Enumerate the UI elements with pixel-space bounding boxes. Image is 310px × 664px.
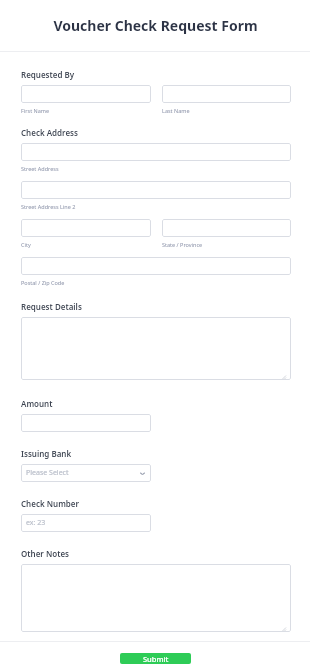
staticText: Street Address Line 2	[21, 203, 76, 210]
button[interactable]: Check Number	[21, 514, 151, 532]
staticText: ex: 23	[26, 518, 46, 528]
staticText: Submit	[143, 654, 169, 664]
staticText: City	[21, 241, 31, 248]
staticText: Requested By	[21, 69, 75, 80]
staticText: Other Notes	[21, 548, 70, 559]
staticText: Last Name	[162, 107, 190, 114]
staticText: Issuing Bank	[21, 448, 72, 459]
staticText: Check Number	[21, 498, 79, 509]
staticText: State / Province	[162, 241, 203, 248]
button[interactable]: Issuing Bank	[21, 464, 151, 482]
staticText: Request Details	[21, 301, 82, 312]
staticText: Street Address	[21, 165, 59, 172]
button[interactable]: Request Details	[21, 317, 291, 380]
staticText: First Name	[21, 107, 50, 114]
button[interactable]: Other Notes	[21, 564, 291, 632]
button[interactable]: Last Name	[162, 85, 291, 103]
button[interactable]: First Name	[21, 85, 151, 103]
button[interactable]: Amount	[21, 414, 151, 432]
staticText: Voucher Check Request Form	[53, 16, 258, 35]
staticText: Check Address	[21, 127, 78, 138]
button[interactable]: Street Address Line 2	[21, 181, 291, 199]
staticText: Postal / Zip Code	[21, 279, 65, 286]
button[interactable]: Street Address	[21, 143, 291, 161]
button[interactable]: Submit	[120, 653, 191, 664]
button[interactable]: City	[21, 219, 151, 237]
staticText: Amount	[21, 398, 53, 409]
button[interactable]: Postal / Zip Code	[21, 257, 291, 275]
button[interactable]: State / Province	[162, 219, 291, 237]
staticText: Please Select	[26, 468, 69, 478]
